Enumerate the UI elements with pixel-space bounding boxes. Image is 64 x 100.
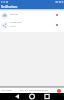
button[interactable]: Back: [11, 93, 18, 100]
staticText: Notifications: [1, 5, 18, 9]
other: Cloud backup: [1, 12, 8, 19]
button[interactable]: Recents: [46, 93, 53, 100]
staticText: This is a test advertisement: [20, 89, 49, 92]
staticText: 2 days: [10, 25, 17, 28]
button[interactable]: Home: [29, 93, 36, 100]
button[interactable]: More apps: [0, 88, 64, 93]
staticText: Backup: [10, 13, 18, 16]
staticText: Shared file: [10, 21, 22, 24]
staticText: More apps: [1, 89, 12, 92]
button[interactable]: Cloud backup: [0, 10, 64, 20]
other: Shared file: [1, 22, 8, 29]
other: Advertiser: [57, 89, 61, 93]
button[interactable]: Shared file: [0, 20, 64, 30]
